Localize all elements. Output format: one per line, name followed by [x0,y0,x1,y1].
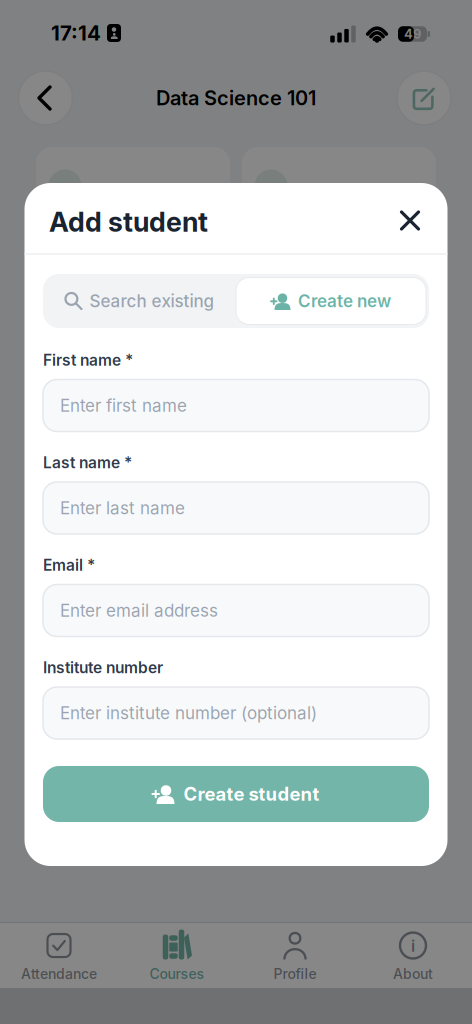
staticText: Data Science 101 [156,86,316,110]
button[interactable]: Search existing [45,274,235,328]
button[interactable]: Create new [236,277,426,324]
staticText: Last name * [43,453,132,472]
staticText: Add student [49,206,208,238]
staticText: Attendance [21,965,97,982]
staticText: Create student [183,783,319,805]
button[interactable]: Create student [43,766,429,822]
staticText: Search existing [89,291,214,311]
button[interactable]: Attendance [3,925,115,987]
button[interactable]: Profile [239,925,351,987]
staticText: Email * [43,556,95,574]
staticText: Institute number [43,658,163,677]
button[interactable]: Courses [121,925,233,987]
staticText: First name * [43,351,133,369]
button[interactable]: Edit course [397,71,451,125]
staticText: 49 [404,26,421,42]
staticText: Enter last name [60,498,185,518]
staticText: i [411,936,415,956]
staticText: About [393,965,433,982]
button[interactable]: i [357,925,469,987]
button[interactable]: Back [18,71,72,125]
staticText: Enter first name [60,395,187,416]
staticText: 17:14 [51,21,101,45]
button[interactable]: Close [391,202,428,239]
staticText: Profile [273,965,316,982]
staticText: Create new [298,291,391,311]
staticText: Enter institute number (optional) [60,703,317,723]
staticText: Courses [149,965,204,982]
staticText: Enter email address [60,600,218,621]
